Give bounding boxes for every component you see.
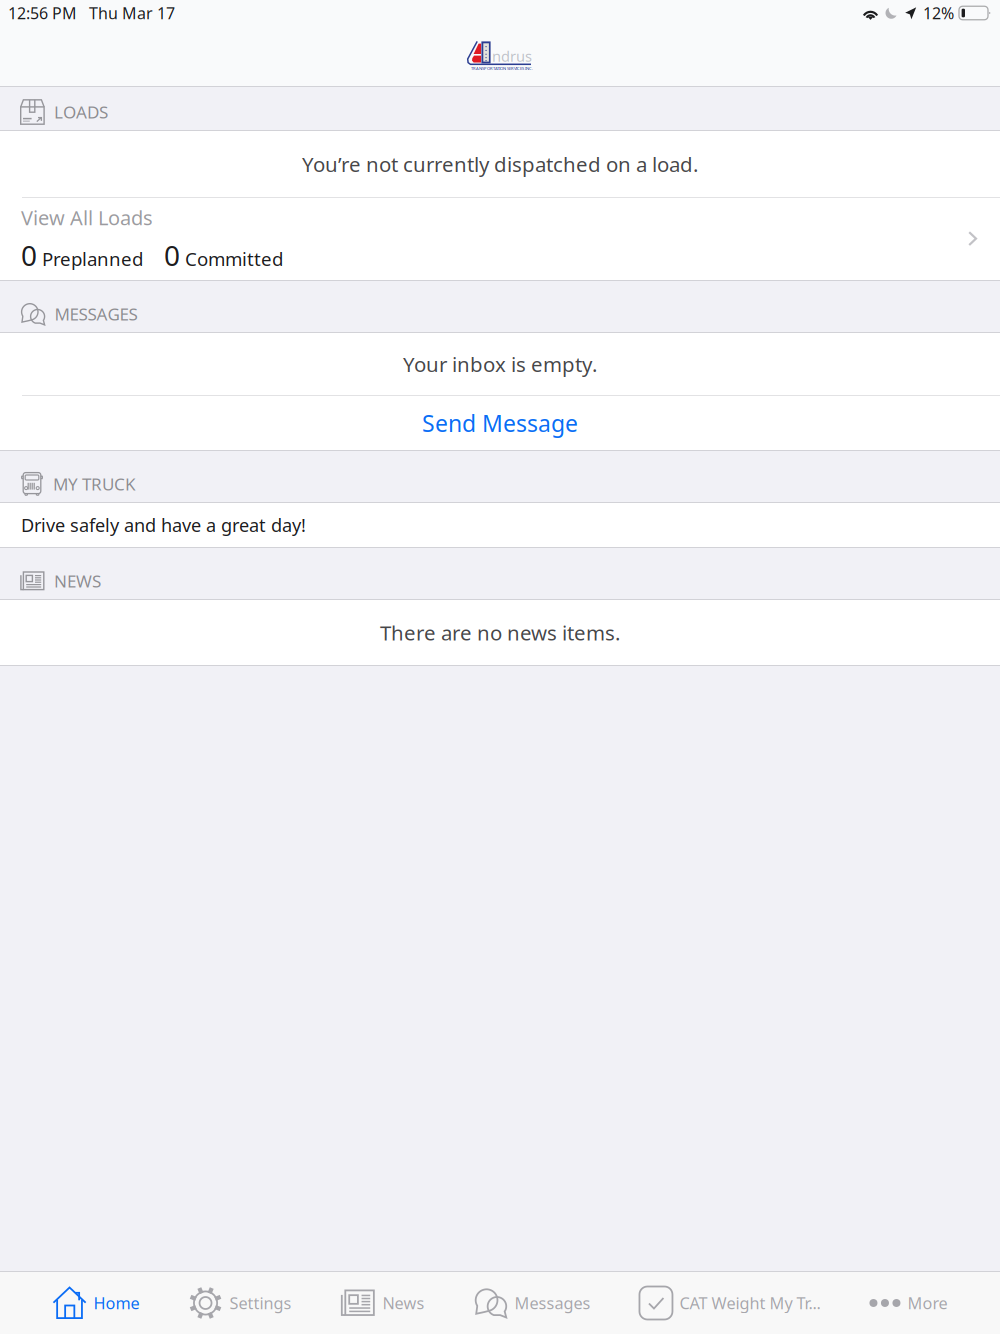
button[interactable]: Settings [188, 1272, 291, 1334]
staticText: News [382, 1292, 424, 1314]
staticText: Your inbox is empty. [403, 350, 597, 378]
staticText: 0 [21, 236, 37, 274]
button[interactable]: Home [52, 1272, 139, 1334]
button[interactable]: CAT Weight My Tr... [639, 1272, 820, 1334]
staticText: TRANSPORTATION SERVICES INC. [471, 66, 533, 71]
staticText: LOADS [54, 100, 108, 124]
staticText: More [907, 1292, 947, 1314]
staticText: 12% [923, 2, 954, 24]
staticText: Settings [229, 1292, 291, 1314]
staticText: CAT Weight My Tr... [679, 1292, 820, 1314]
staticText: Thu Mar 17 [89, 2, 175, 24]
button[interactable]: News [340, 1272, 424, 1334]
button[interactable]: Messages [473, 1272, 590, 1334]
staticText: NEWS [54, 569, 101, 593]
staticText: Drive safely and have a great day! [21, 513, 306, 537]
staticText: Committed [180, 246, 283, 271]
staticText: You’re not currently dispatched on a loa… [302, 150, 698, 178]
staticText: Send Message [422, 407, 578, 439]
button[interactable]: View All Loads [0, 198, 1000, 280]
staticText: Messages [514, 1292, 590, 1314]
staticText: There are no news items. [380, 619, 620, 646]
staticText: 12:56 PM [8, 2, 77, 24]
staticText: Home [93, 1292, 139, 1314]
button[interactable]: More [869, 1272, 947, 1334]
staticText: View All Loads [21, 204, 153, 231]
button[interactable]: Send Message [0, 396, 1000, 450]
staticText: MESSAGES [54, 302, 137, 326]
staticText: ndrus [492, 46, 532, 66]
staticText: MY TRUCK [53, 472, 136, 496]
staticText: 0 [164, 236, 180, 274]
staticText: Preplanned [37, 246, 143, 271]
